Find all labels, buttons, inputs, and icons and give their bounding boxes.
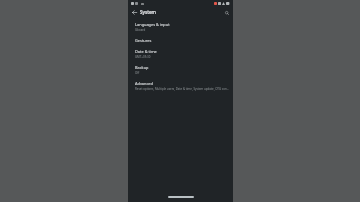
staticText: Languages & input (135, 22, 170, 27)
button[interactable]: Gestures (128, 35, 233, 46)
staticText: Off (135, 71, 140, 75)
staticText: System (140, 9, 156, 15)
button[interactable]: Advanced (128, 78, 233, 94)
button[interactable]: Languages & input (128, 19, 233, 35)
staticText: Reset options, Multiple users, Date & ti… (135, 87, 229, 91)
staticText: Gboard (135, 28, 146, 32)
staticText: Backup (135, 65, 149, 70)
staticText: GMT+05:30 (135, 55, 151, 59)
button[interactable]: Home (168, 196, 194, 198)
staticText: Date & time (135, 49, 157, 54)
button[interactable]: Back (130, 8, 139, 17)
staticText: Gestures (135, 38, 152, 43)
staticText: Advanced (135, 81, 153, 86)
button[interactable]: Search (222, 8, 231, 17)
button[interactable]: Date & time (128, 46, 233, 62)
button[interactable]: Backup (128, 62, 233, 78)
